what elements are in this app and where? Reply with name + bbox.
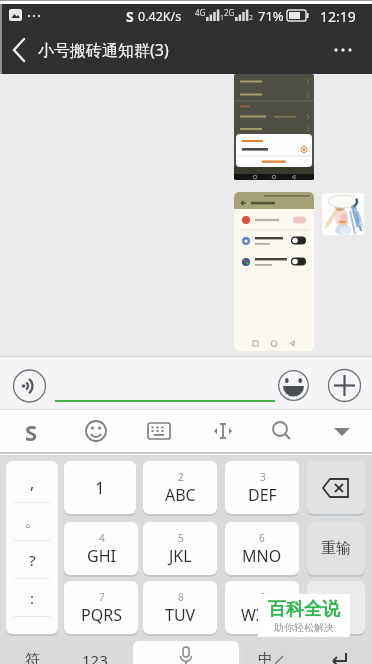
staticText: S xyxy=(25,417,38,445)
staticText: 123 xyxy=(82,650,108,664)
button[interactable]: 1 xyxy=(64,461,136,514)
button[interactable] xyxy=(82,417,110,445)
button[interactable] xyxy=(234,74,314,180)
button[interactable] xyxy=(12,369,47,404)
staticText: : xyxy=(30,588,35,608)
button[interactable]: 3 xyxy=(225,461,299,514)
button[interactable]: 2 xyxy=(143,461,217,514)
staticText: 4G xyxy=(195,7,206,18)
button[interactable] xyxy=(326,36,360,64)
staticText: 6 xyxy=(259,531,265,545)
button[interactable] xyxy=(314,641,366,664)
staticText: 2 xyxy=(249,13,254,23)
staticText: 1 xyxy=(95,476,105,499)
staticText: 0.42K/s xyxy=(138,8,182,25)
button[interactable] xyxy=(6,461,58,634)
staticText: 1 xyxy=(220,13,225,23)
staticText: 2 xyxy=(178,470,184,484)
staticText: 重输 xyxy=(321,539,351,558)
button[interactable] xyxy=(243,641,310,664)
staticText: 3 xyxy=(260,470,266,484)
staticText: JKL xyxy=(169,545,192,567)
staticText: 4 xyxy=(99,531,105,545)
button[interactable] xyxy=(133,641,239,664)
staticText: 百科全说 xyxy=(268,598,340,621)
staticText: , xyxy=(30,472,35,494)
button[interactable] xyxy=(6,641,58,664)
staticText: ? xyxy=(29,550,36,570)
button[interactable]: 8 xyxy=(143,581,217,634)
staticText: ABC xyxy=(165,484,196,506)
staticText: 8 xyxy=(178,590,184,604)
staticText: 71% xyxy=(258,7,284,25)
staticText: 助你轻松解决 xyxy=(274,621,334,634)
staticText: GHI xyxy=(87,545,116,567)
staticText: WXYZ xyxy=(241,604,284,626)
staticText: 5 xyxy=(178,531,184,545)
button[interactable] xyxy=(328,369,362,403)
button[interactable] xyxy=(8,36,34,64)
button[interactable] xyxy=(322,193,364,235)
button[interactable] xyxy=(307,581,365,634)
button[interactable] xyxy=(64,641,126,664)
button[interactable]: 5 xyxy=(143,522,217,575)
button[interactable]: 9 xyxy=(225,581,299,634)
staticText: 中 xyxy=(258,650,273,664)
button[interactable] xyxy=(209,417,237,445)
button[interactable] xyxy=(328,420,356,442)
staticText: 12:19 xyxy=(320,7,356,26)
staticText: 7 xyxy=(99,590,105,604)
staticText: 9 xyxy=(260,590,266,604)
button[interactable]: 6 xyxy=(225,522,299,575)
button[interactable]: 4 xyxy=(64,522,138,575)
button[interactable]: S xyxy=(16,417,46,445)
button[interactable] xyxy=(278,370,310,402)
staticText: MNO xyxy=(242,545,282,567)
staticText: 。 xyxy=(25,513,39,531)
button[interactable] xyxy=(307,461,365,514)
staticText: PQRS xyxy=(81,604,122,626)
button[interactable]: 重输 xyxy=(307,522,365,575)
button[interactable] xyxy=(234,192,314,351)
staticText: TUV xyxy=(165,604,196,626)
staticText: 2G xyxy=(224,7,235,18)
button[interactable] xyxy=(267,417,295,445)
staticText: 小号搬砖通知群(3) xyxy=(38,39,169,61)
staticText: S xyxy=(126,7,134,26)
staticText: 符 xyxy=(25,651,40,664)
button[interactable] xyxy=(145,417,173,445)
staticText: DEF xyxy=(248,484,277,506)
button[interactable]: 7 xyxy=(64,581,138,634)
